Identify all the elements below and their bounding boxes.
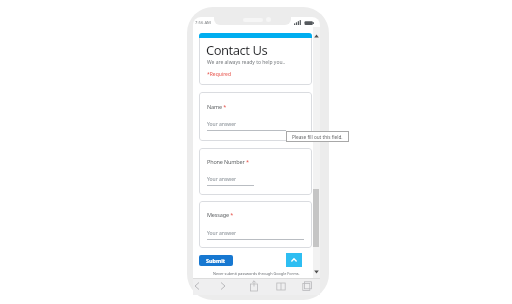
button[interactable] bbox=[249, 280, 259, 292]
button[interactable] bbox=[199, 92, 312, 141]
staticText: Please fill out this field. bbox=[292, 134, 343, 140]
button[interactable] bbox=[286, 253, 302, 267]
button[interactable]: Submit bbox=[199, 255, 233, 266]
staticText: Your answer bbox=[207, 230, 237, 237]
staticText: Phone Number * bbox=[207, 158, 249, 165]
button[interactable] bbox=[218, 281, 228, 291]
staticText: Name * bbox=[207, 103, 227, 110]
staticText: Your answer bbox=[207, 176, 237, 183]
staticText: Message * bbox=[207, 211, 234, 218]
button[interactable] bbox=[199, 201, 312, 248]
staticText: We are always ready to help you.. bbox=[207, 59, 286, 66]
staticText: Never submit passwords through Google Fo… bbox=[213, 271, 300, 276]
button[interactable] bbox=[199, 148, 312, 195]
staticText: 7:56 AM bbox=[195, 20, 211, 26]
button[interactable] bbox=[276, 282, 286, 291]
button[interactable] bbox=[192, 281, 202, 291]
button[interactable] bbox=[302, 281, 313, 291]
staticText: Your answer bbox=[207, 121, 237, 128]
staticText: *Required bbox=[207, 71, 232, 78]
staticText: Submit bbox=[206, 257, 226, 264]
staticText: Contact Us bbox=[206, 41, 268, 59]
